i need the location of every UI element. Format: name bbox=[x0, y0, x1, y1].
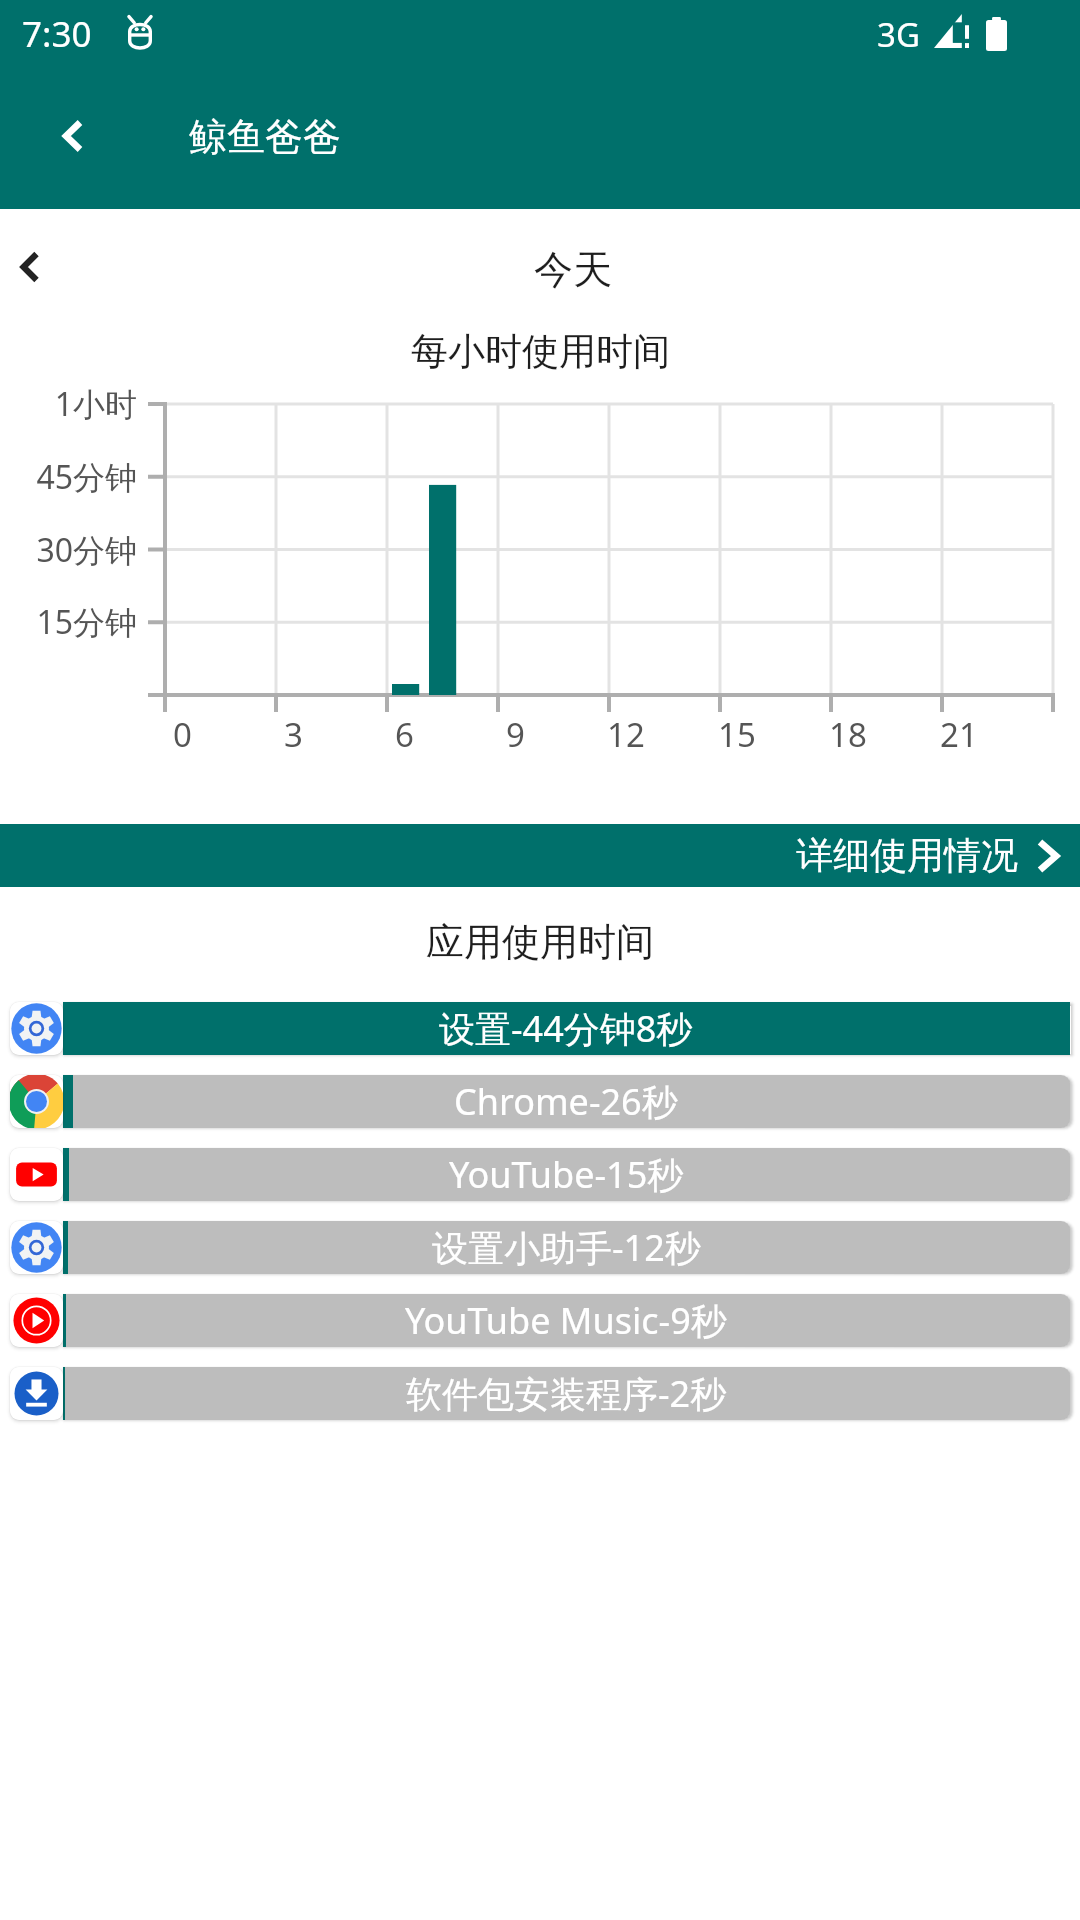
staticText: 详细使用情况 bbox=[796, 832, 1018, 879]
staticText: 18 bbox=[829, 712, 867, 757]
staticText: 鲸鱼爸爸 bbox=[189, 113, 341, 161]
staticText: 6 bbox=[395, 712, 414, 757]
button[interactable]: 设置小助手-12秒 bbox=[0, 1221, 1080, 1274]
button[interactable]: YouTube Music-9秒 bbox=[0, 1294, 1080, 1347]
staticText: Chrome-26秒 bbox=[454, 1077, 678, 1126]
staticText: 15 bbox=[718, 712, 756, 757]
staticText: 3 bbox=[284, 712, 303, 757]
staticText: 7:30 bbox=[22, 10, 92, 58]
staticText: 应用使用时间 bbox=[426, 918, 654, 966]
button[interactable]: YouTube-15秒 bbox=[0, 1148, 1080, 1201]
staticText: 设置-44分钟8秒 bbox=[439, 1004, 693, 1053]
button[interactable]: 设置-44分钟8秒 bbox=[0, 1002, 1080, 1055]
staticText: 设置小助手-12秒 bbox=[432, 1223, 701, 1272]
staticText: 9 bbox=[506, 712, 525, 757]
staticText: YouTube Music-9秒 bbox=[405, 1296, 727, 1345]
button[interactable]: Previous day bbox=[0, 237, 60, 297]
staticText: 21 bbox=[940, 712, 978, 757]
staticText: 30分钟 bbox=[36, 528, 137, 572]
staticText: 12 bbox=[607, 712, 645, 757]
button[interactable]: 详细使用情况 bbox=[0, 824, 1080, 887]
staticText: 45分钟 bbox=[36, 455, 137, 499]
staticText: 3G bbox=[877, 12, 920, 57]
staticText: 1小时 bbox=[54, 382, 137, 426]
staticText: 15分钟 bbox=[36, 600, 137, 644]
button[interactable]: Back bbox=[40, 103, 106, 169]
staticText: 今天 bbox=[534, 245, 612, 294]
button[interactable]: Chrome-26秒 bbox=[0, 1075, 1080, 1128]
staticText: 每小时使用时间 bbox=[411, 328, 670, 375]
staticText: YouTube-15秒 bbox=[449, 1150, 684, 1199]
staticText: 0 bbox=[173, 712, 192, 757]
staticText: 软件包安装程序-2秒 bbox=[406, 1369, 727, 1418]
button[interactable]: 软件包安装程序-2秒 bbox=[0, 1367, 1080, 1420]
